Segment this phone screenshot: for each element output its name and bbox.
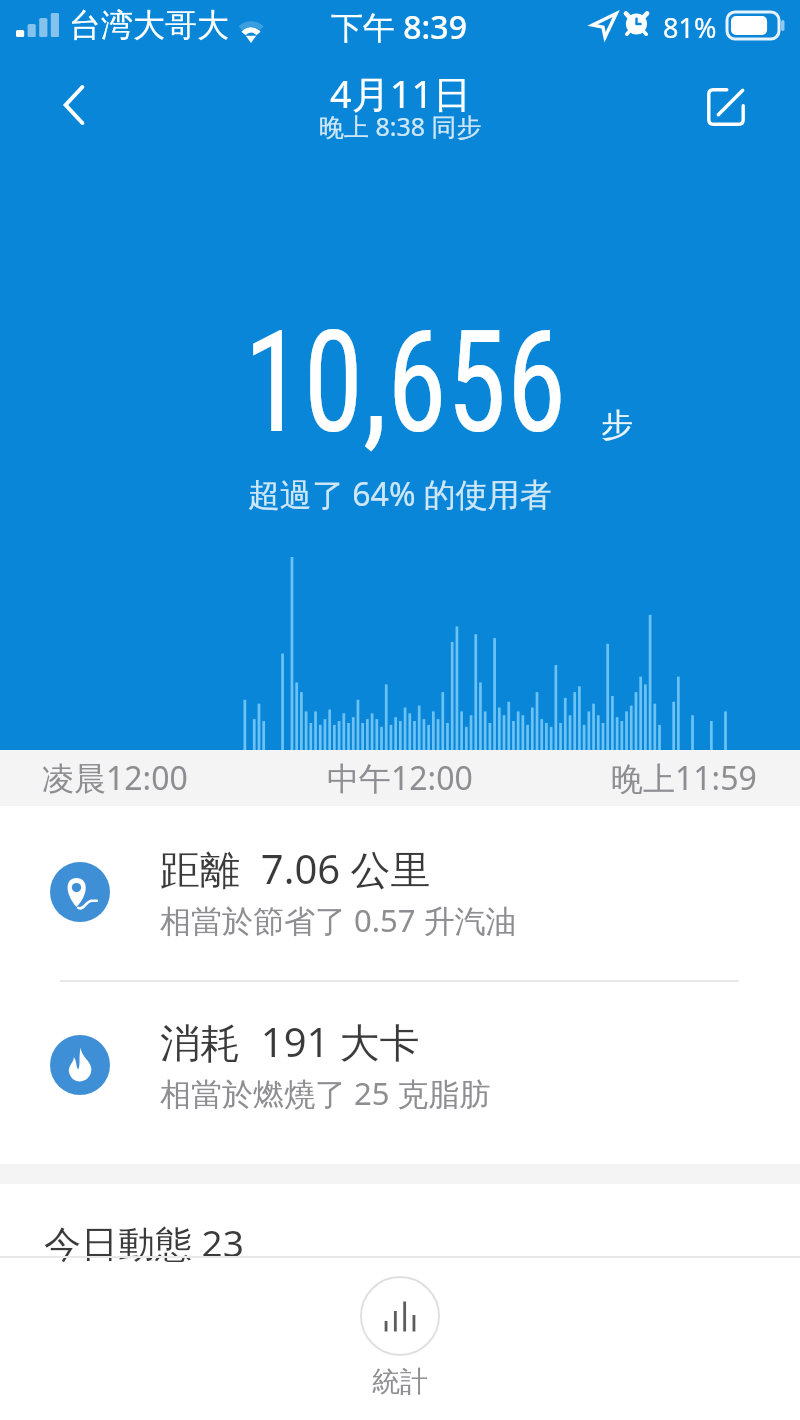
staticText: 晚上11:59 bbox=[611, 756, 757, 800]
button[interactable]: 今日動態 23 bbox=[0, 1184, 800, 1257]
staticText: 步 bbox=[601, 405, 633, 445]
button[interactable]: Share bbox=[690, 71, 762, 143]
staticText: 相當於節省了 0.57 升汽油 bbox=[160, 899, 517, 941]
staticText: 統計 bbox=[372, 1364, 428, 1399]
staticText: 超過了 64% 的使用者 bbox=[248, 472, 552, 516]
staticText: 下午 8:39 bbox=[331, 5, 467, 49]
staticText: 相當於燃燒了 25 克脂肪 bbox=[160, 1072, 491, 1114]
staticText: 中午12:00 bbox=[327, 756, 473, 800]
button[interactable]: 距離 7.06 公里 bbox=[0, 806, 800, 978]
staticText: 81% bbox=[663, 9, 717, 46]
staticText: 凌晨12:00 bbox=[42, 756, 188, 800]
button[interactable]: 消耗 191 大卡 bbox=[0, 979, 800, 1151]
staticText: 4月11日 bbox=[330, 67, 472, 119]
button[interactable]: Statistics bbox=[360, 1276, 440, 1399]
staticText: 消耗 191 大卡 bbox=[160, 1014, 420, 1069]
button[interactable]: Back bbox=[38, 69, 110, 141]
staticText: 今日動態 23 bbox=[44, 1217, 244, 1268]
staticText: 晚上 8:38 同步 bbox=[319, 109, 482, 143]
staticText: 10,656 bbox=[244, 300, 566, 465]
staticText: 距離 7.06 公里 bbox=[160, 841, 431, 896]
staticText: 台湾大哥大 bbox=[69, 5, 229, 45]
